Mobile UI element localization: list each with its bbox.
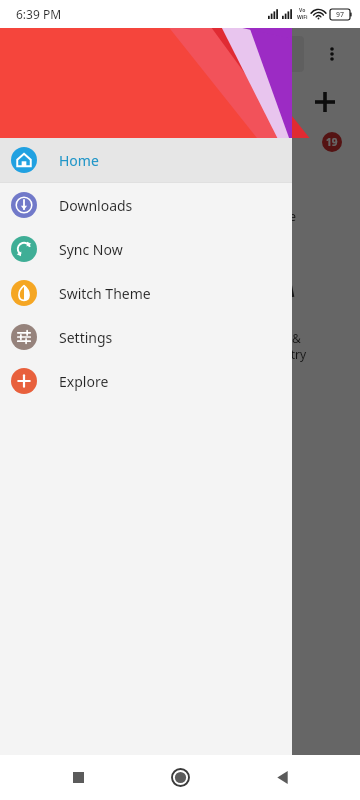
button[interactable]: Home [156,755,204,800]
button[interactable]: Add [308,85,342,119]
staticText: Downloads [59,196,133,215]
staticText: WiFi [297,14,308,21]
button[interactable]: Explore [0,359,292,403]
button[interactable]: Settings [0,315,292,359]
staticText: Settings [59,328,113,347]
staticText: TallyPrime Training [238,208,297,240]
button[interactable]: Home [0,138,292,182]
staticText: 97 [336,10,345,20]
button[interactable]: More options [314,36,350,72]
button[interactable]: TallyPrime Training [186,132,348,240]
staticText: 2 [155,135,161,149]
staticText: 6:39 PM [16,6,62,22]
button[interactable]: Downloads [0,183,292,227]
button[interactable]: Sync Now [0,227,292,271]
staticText: Production & Voucher Entry [53,208,133,240]
staticText: 19 [326,135,338,149]
staticText: Switch Theme [59,284,151,303]
staticText: TallyPrime Training [64,330,123,362]
button[interactable]: TallyPrime Training [12,254,174,362]
button[interactable] [10,36,304,72]
staticText: Sync Now [59,240,123,259]
button[interactable]: Recents [54,755,102,800]
button[interactable]: Switch Theme [0,271,292,315]
staticText: Vo [299,7,306,14]
staticText: Production & Voucher Entry [227,330,307,362]
staticText: Home [59,151,99,170]
button[interactable]: Back [258,755,306,800]
button[interactable]: Production & Voucher Entry [186,254,348,362]
button[interactable]: Production & Voucher Entry [12,132,174,240]
staticText: Explore [59,372,109,391]
